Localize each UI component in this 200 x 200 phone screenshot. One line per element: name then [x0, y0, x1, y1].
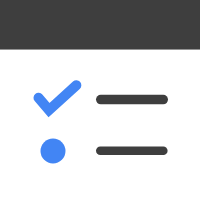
- button[interactable]: Tasks: [0, 0, 200, 50]
- button[interactable]: Completed task: [0, 76, 200, 124]
- button[interactable]: Open task: [0, 128, 200, 176]
